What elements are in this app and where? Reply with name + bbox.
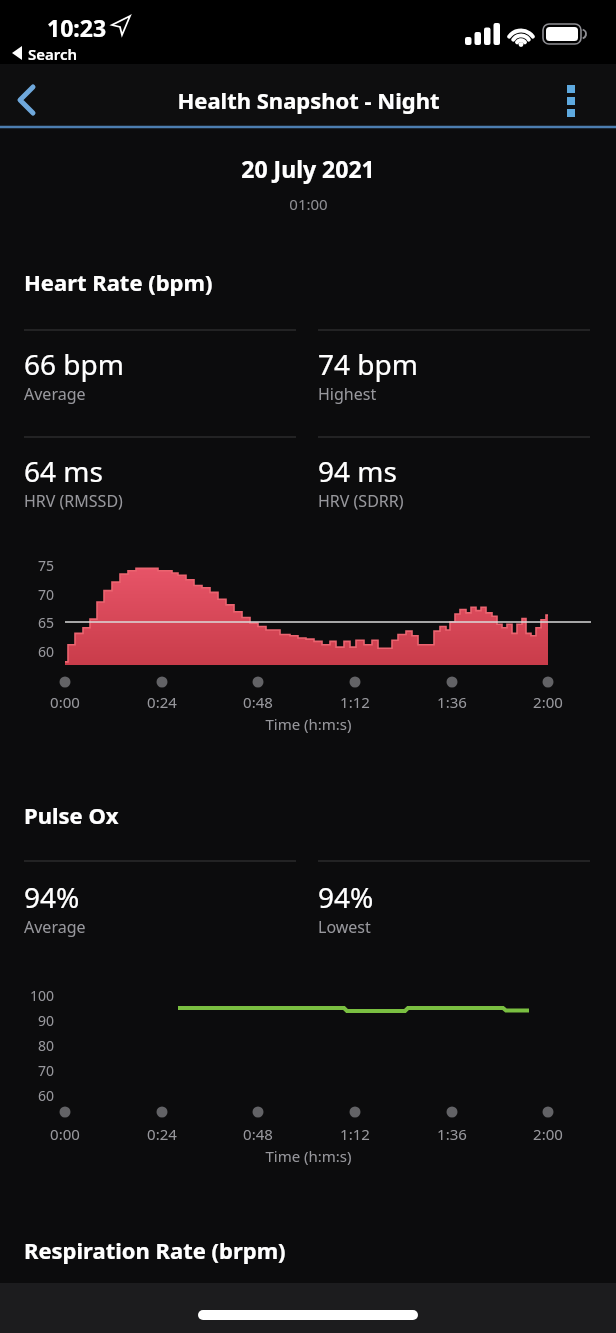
button[interactable] [8, 76, 52, 120]
button[interactable] [552, 76, 592, 116]
staticText: 10:23 [47, 12, 107, 43]
staticText: Health Snapshot - Night [177, 85, 440, 115]
staticText: 75 [38, 556, 55, 575]
staticText: 0:00 [5, 692, 125, 712]
staticText: HRV (RMSSD) [24, 490, 123, 512]
staticText: 0:48 [198, 1124, 318, 1144]
staticText: 65 [38, 613, 55, 632]
staticText: 1:36 [392, 692, 512, 712]
staticText: 01:00 [289, 194, 328, 214]
staticText: 94% [318, 878, 374, 916]
staticText: Search [28, 44, 78, 64]
staticText: 90 [38, 1011, 55, 1030]
staticText: Average [24, 383, 86, 405]
staticText: Time (h:m:s) [265, 1146, 352, 1166]
staticText: 94% [24, 878, 80, 916]
staticText: 0:24 [102, 1124, 222, 1144]
staticText: 70 [38, 1061, 55, 1080]
staticText: Average [24, 916, 86, 938]
staticText: 94 ms [318, 452, 397, 490]
staticText: 66 bpm [24, 345, 124, 383]
staticText: 2:00 [488, 692, 608, 712]
staticText: Heart Rate (bpm) [24, 267, 213, 297]
staticText: HRV (SDRR) [318, 490, 404, 512]
staticText: Respiration Rate (brpm) [24, 1235, 286, 1265]
staticText: Pulse Ox [24, 800, 119, 830]
staticText: 70 [38, 585, 55, 604]
staticText: 60 [38, 1086, 55, 1105]
staticText: Time (h:m:s) [265, 714, 352, 734]
staticText: 60 [38, 642, 55, 661]
staticText: 1:12 [295, 692, 415, 712]
staticText: 100 [30, 986, 55, 1005]
staticText: 20 July 2021 [241, 153, 375, 184]
staticText: 74 bpm [318, 345, 418, 383]
staticText: 2:00 [488, 1124, 608, 1144]
staticText: 0:00 [5, 1124, 125, 1144]
staticText: Lowest [318, 916, 371, 938]
staticText: 0:24 [102, 692, 222, 712]
staticText: 80 [38, 1036, 55, 1055]
staticText: Highest [318, 383, 377, 405]
staticText: 0:48 [198, 692, 318, 712]
staticText: 1:36 [392, 1124, 512, 1144]
staticText: 64 ms [24, 452, 103, 490]
staticText: 1:12 [295, 1124, 415, 1144]
